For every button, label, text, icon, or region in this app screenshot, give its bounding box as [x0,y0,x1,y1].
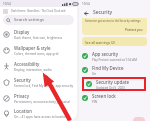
staticText: Search settings [14,17,44,23]
button[interactable]: Find My Device [79,63,150,77]
staticText: Find My Device [92,65,124,71]
staticText: Accessibility [14,61,40,67]
staticText: On – 41 apps have access to location [14,115,68,119]
staticText: Someone got access to the Security setti… [85,19,141,23]
button[interactable]: Privacy [0,90,77,106]
staticText: Display [14,29,30,35]
button[interactable]: Wallpaper & style [0,42,77,58]
staticText: Dark theme, font size, brightness [14,36,63,40]
staticText: Privacy [14,93,30,99]
button[interactable]: Back [82,9,90,17]
button[interactable]: Display [0,26,77,42]
staticText: 10:54 [82,2,90,6]
button[interactable]: Search settings [3,15,74,25]
button[interactable]: See all warnings (2) [82,37,147,46]
staticText: Location [14,108,32,114]
button[interactable]: Protect you [123,27,145,33]
staticText: Security [93,9,113,16]
button[interactable]: App security [79,49,150,63]
staticText: Screen lock [92,93,116,99]
button[interactable]: Screen lock [79,91,150,105]
staticText: See all warnings (2) [85,40,115,44]
staticText: On [92,72,97,76]
staticText: Dark theme · Brandless · The Clock Clock… [11,9,66,13]
button[interactable]: Accessibility [0,58,77,74]
staticText: Screen lock, Find My Device, app securit… [14,84,74,88]
staticText: Security [14,77,31,83]
staticText: Protect you [125,28,143,32]
staticText: Wallpaper & style [14,45,51,51]
button[interactable]: Security update [82,77,146,91]
staticText: Permissions, account activity, personal … [14,100,75,104]
staticText: Security update [96,79,129,85]
button[interactable]: Location [0,106,77,121]
staticText: 10:54 [3,2,11,6]
button[interactable]: Security [0,74,77,90]
staticText: Play Protect scanned at 7:54 AM [92,58,137,62]
staticText: App security [92,51,119,57]
staticText: Display, interaction, audio [14,68,52,72]
staticText: Updated Oct 5, 2023 [96,86,125,90]
button[interactable]: Someone got access to the Security setti… [82,18,147,35]
staticText: PIN [92,100,98,104]
staticText: Colors, themed icons, app grid [14,52,59,56]
